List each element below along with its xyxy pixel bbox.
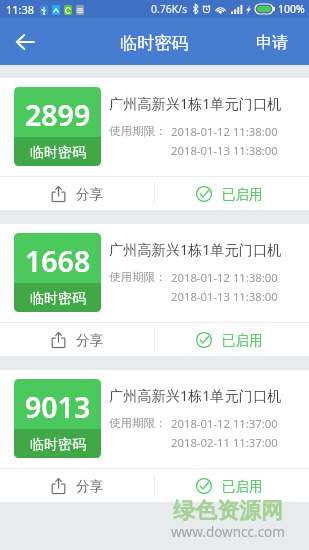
staticText: 2018-01-13 11:38:00 <box>171 289 278 304</box>
button[interactable]: 已启用 <box>152 177 306 210</box>
staticText: 1668 <box>25 242 91 281</box>
button[interactable]: 申请 <box>244 18 309 65</box>
button[interactable]: 已启用 <box>152 469 306 502</box>
staticText: 临时密码 <box>30 290 86 308</box>
staticText: 2899 <box>25 96 91 135</box>
staticText: 绿色资源网 <box>173 497 283 525</box>
button[interactable]: Back <box>0 18 47 65</box>
staticText: 使用期限： <box>109 124 167 138</box>
staticText: 广州高新兴1栋1单元门口机 <box>109 94 282 113</box>
button[interactable]: 9013 <box>0 370 309 502</box>
staticText: 临时密码 <box>30 144 86 162</box>
button[interactable]: 2899 <box>0 78 309 210</box>
staticText: www.downcc.com <box>171 523 285 541</box>
staticText: 11:38 <box>6 2 35 17</box>
button[interactable]: 已启用 <box>152 323 306 356</box>
staticText: 2018-01-12 11:38:00 <box>171 124 278 139</box>
staticText: 2018-01-13 11:38:00 <box>171 143 278 158</box>
staticText: 临时密码 <box>30 436 86 454</box>
staticText: 2018-01-12 11:37:00 <box>171 416 278 431</box>
staticText: 使用期限： <box>109 416 167 430</box>
staticText: 申请 <box>256 32 289 53</box>
staticText: 0.76K/s <box>151 2 188 16</box>
staticText: 2018-01-12 11:38:00 <box>171 270 278 285</box>
staticText: 分享 <box>76 186 104 203</box>
staticText: 广州高新兴1栋1单元门口机 <box>109 240 282 259</box>
button[interactable]: 1668 <box>0 224 309 356</box>
button[interactable]: 分享 <box>0 469 154 502</box>
button[interactable]: 分享 <box>0 323 154 356</box>
staticText: 广州高新兴1栋1单元门口机 <box>109 386 282 405</box>
staticText: 9013 <box>25 388 91 427</box>
staticText: 临时密码 <box>120 32 189 54</box>
staticText: 100% <box>278 2 305 16</box>
staticText: 分享 <box>76 332 104 349</box>
staticText: 已启用 <box>222 478 263 495</box>
staticText: 已启用 <box>222 332 263 349</box>
staticText: 使用期限： <box>109 270 167 284</box>
staticText: 分享 <box>76 478 104 495</box>
staticText: 2018-02-11 11:37:00 <box>171 435 278 450</box>
staticText: 已启用 <box>222 186 263 203</box>
button[interactable]: 分享 <box>0 177 154 210</box>
